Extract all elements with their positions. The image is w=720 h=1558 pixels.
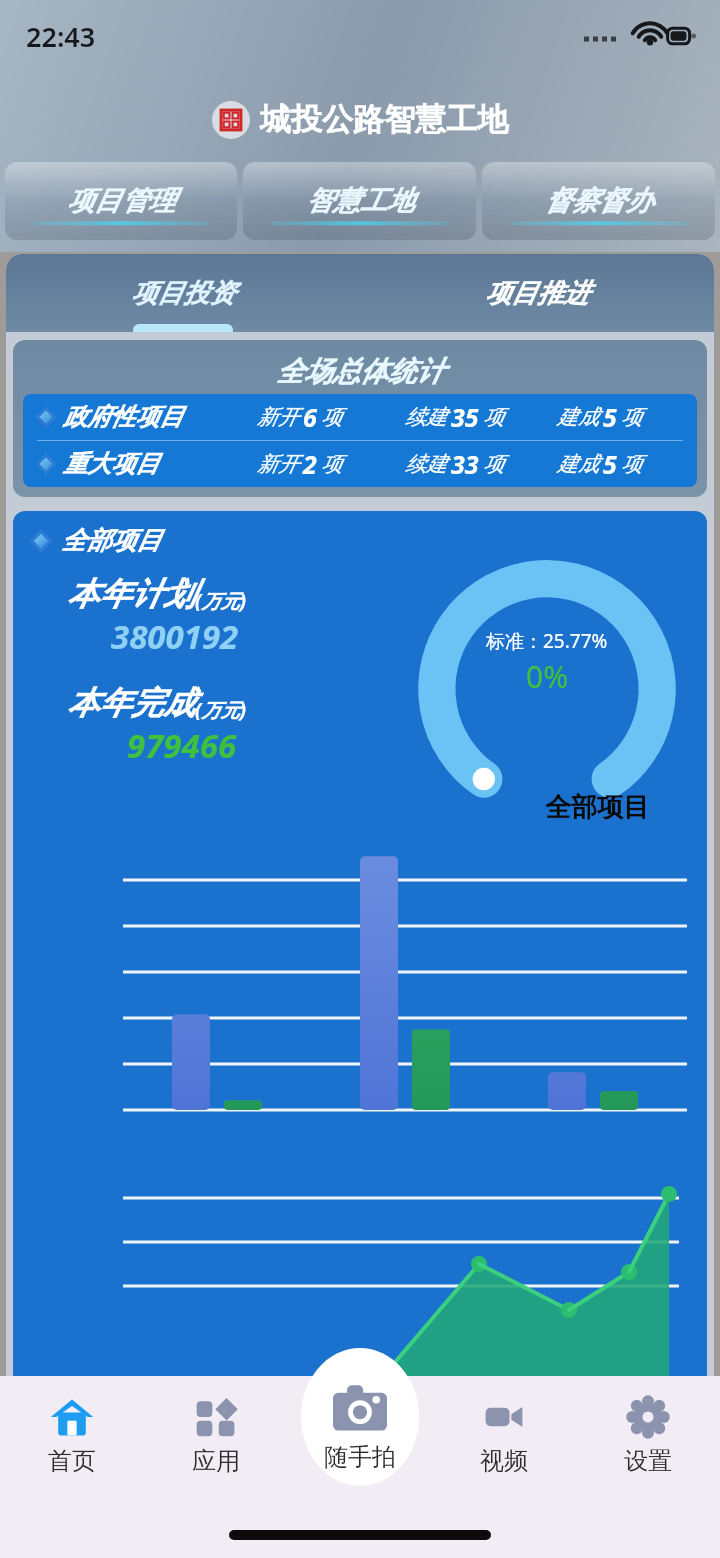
button[interactable]: 视频 [432,1376,576,1494]
staticText: 项目推进 [485,277,589,310]
staticText: 全场总体统计 [276,354,444,389]
staticText: 2 [303,447,317,481]
staticText: 本年完成 [67,683,195,723]
staticText: 33 [451,447,479,481]
button[interactable]: 督察督办 [482,162,715,240]
staticText: 设置 [624,1446,672,1476]
button[interactable]: 设置 [576,1376,720,1494]
staticText: 新开 [257,404,299,430]
staticText: 应用 [192,1446,240,1476]
staticText: 重大项目 [63,449,159,479]
staticText: 979466 [127,723,237,768]
staticText: 项 [621,451,642,477]
button[interactable]: 政府性项目 [35,394,689,440]
staticText: 项 [483,451,504,477]
button[interactable]: 项目投资 [6,254,360,332]
staticText: 项 [621,404,642,430]
button[interactable]: 智慧工地 [243,162,476,240]
staticText: 智慧工地 [306,184,414,218]
staticText: 项目管理 [67,184,175,218]
staticText: 标准：25.77% [486,628,608,654]
staticText: 项 [321,404,342,430]
staticText: 续建 [405,404,447,430]
button[interactable]: 重大项目 [35,441,689,487]
staticText: 项目投资 [131,277,235,310]
staticText: 政府性项目 [63,402,183,432]
staticText: 全部项目 [545,791,649,824]
staticText: 5 [603,400,617,434]
staticText: 项 [483,404,504,430]
staticText: 城投公路智慧工地 [260,100,508,139]
staticText: 5 [603,447,617,481]
button[interactable]: 项目管理 [5,162,237,240]
staticText: 6 [303,400,317,434]
button[interactable]: 项目推进 [360,254,714,332]
staticText: 新开 [257,451,299,477]
button[interactable]: 应用 [144,1376,288,1494]
staticText: 建成 [557,451,599,477]
staticText: 3800192 [111,614,239,659]
staticText: 首页 [48,1446,96,1476]
staticText: 22:43 [26,18,96,55]
staticText: 本年计划 [67,574,195,614]
staticText: 续建 [405,451,447,477]
staticText: 0% [526,656,569,697]
staticText: 35 [451,400,479,434]
staticText: 全部项目 [61,525,161,556]
staticText: 督察督办 [545,184,653,218]
staticText: 随手拍 [324,1442,396,1472]
staticText: 项 [321,451,342,477]
button[interactable]: 首页 [0,1376,144,1494]
staticText: 建成 [557,404,599,430]
staticText: (万元) [195,697,246,723]
button[interactable]: 随手拍 [301,1348,419,1496]
staticText: 视频 [480,1446,528,1476]
button[interactable]: 全部项目 [29,525,707,556]
staticText: (万元) [195,588,246,614]
